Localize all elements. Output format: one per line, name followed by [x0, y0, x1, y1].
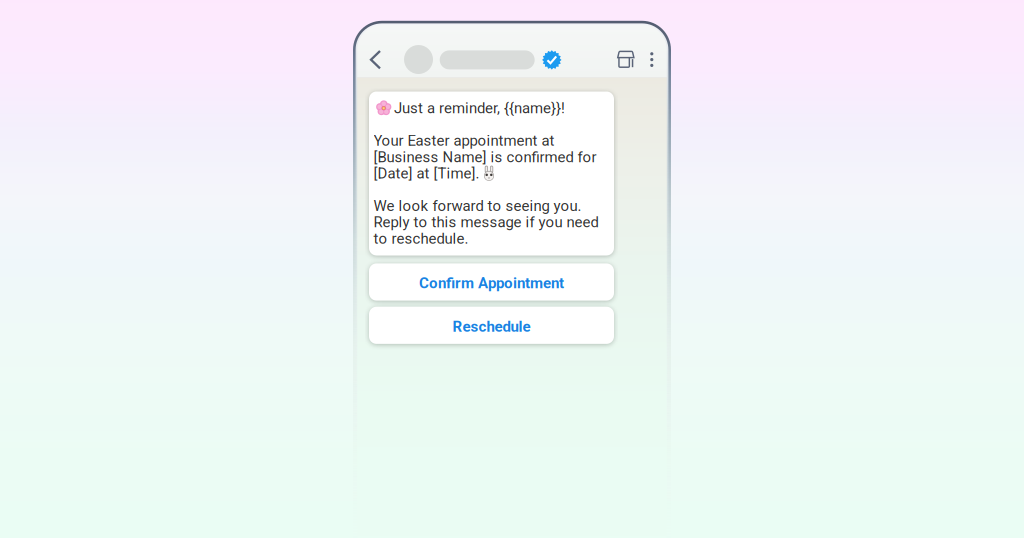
staticText: [Business Name] is confirmed for [373, 148, 596, 166]
button[interactable]: Back [363, 46, 387, 74]
staticText: [Date] at [Time]. [373, 165, 479, 182]
button[interactable]: Reschedule [369, 307, 614, 344]
button[interactable]: More options [641, 46, 663, 74]
staticText: to reschedule. [373, 230, 468, 247]
staticText: We look forward to seeing you. [373, 197, 581, 215]
button[interactable]: Business profile [404, 44, 561, 74]
staticText: Confirm Appointment [419, 274, 564, 292]
button[interactable]: Storefront [612, 45, 640, 73]
staticText: Reschedule [452, 318, 530, 335]
staticText: Reply to this message if you need [373, 213, 598, 231]
staticText: Just a reminder, {{name}}! [394, 99, 565, 117]
staticText: Your Easter appointment at [373, 132, 554, 149]
button[interactable]: Confirm Appointment [369, 263, 614, 301]
